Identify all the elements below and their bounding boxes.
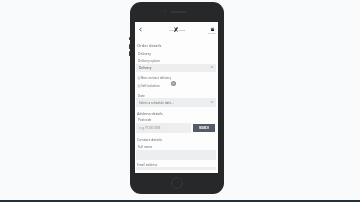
button[interactable]: Delivery: [136, 64, 216, 72]
button[interactable]: e.g. PO30 0DB: [136, 123, 191, 133]
staticText: Order details: [137, 43, 162, 48]
staticText: Delivery option: [138, 59, 161, 63]
button[interactable]: Self-isolation: [138, 84, 160, 88]
staticText: Address details: [137, 111, 163, 116]
staticText: Non-contact delivery: [141, 76, 172, 80]
staticText: Full name: [138, 145, 153, 149]
button[interactable]: SEARCH: [193, 124, 215, 132]
staticText: THE: [169, 29, 174, 32]
staticText: e.g. PO30 0DB: [139, 126, 161, 130]
staticText: Date: [138, 94, 145, 98]
staticText: Select a schedule date...: [139, 101, 174, 105]
staticText: Postcode: [138, 118, 152, 122]
button[interactable]: Select a schedule date...: [136, 98, 216, 107]
button[interactable]: My bag: [205, 26, 217, 35]
staticText: MY BAG: [208, 32, 216, 35]
button[interactable]: Non-contact delivery: [138, 76, 172, 80]
button[interactable]: Back: [137, 26, 144, 33]
staticText: SEARCH: [199, 126, 210, 130]
staticText: Delivery: [138, 51, 151, 56]
staticText: SHOP: [179, 29, 186, 32]
staticText: Contact details: [137, 137, 163, 142]
staticText: Self-isolation: [141, 84, 160, 88]
staticText: Email address: [137, 163, 158, 167]
staticText: Delivery: [139, 66, 152, 70]
